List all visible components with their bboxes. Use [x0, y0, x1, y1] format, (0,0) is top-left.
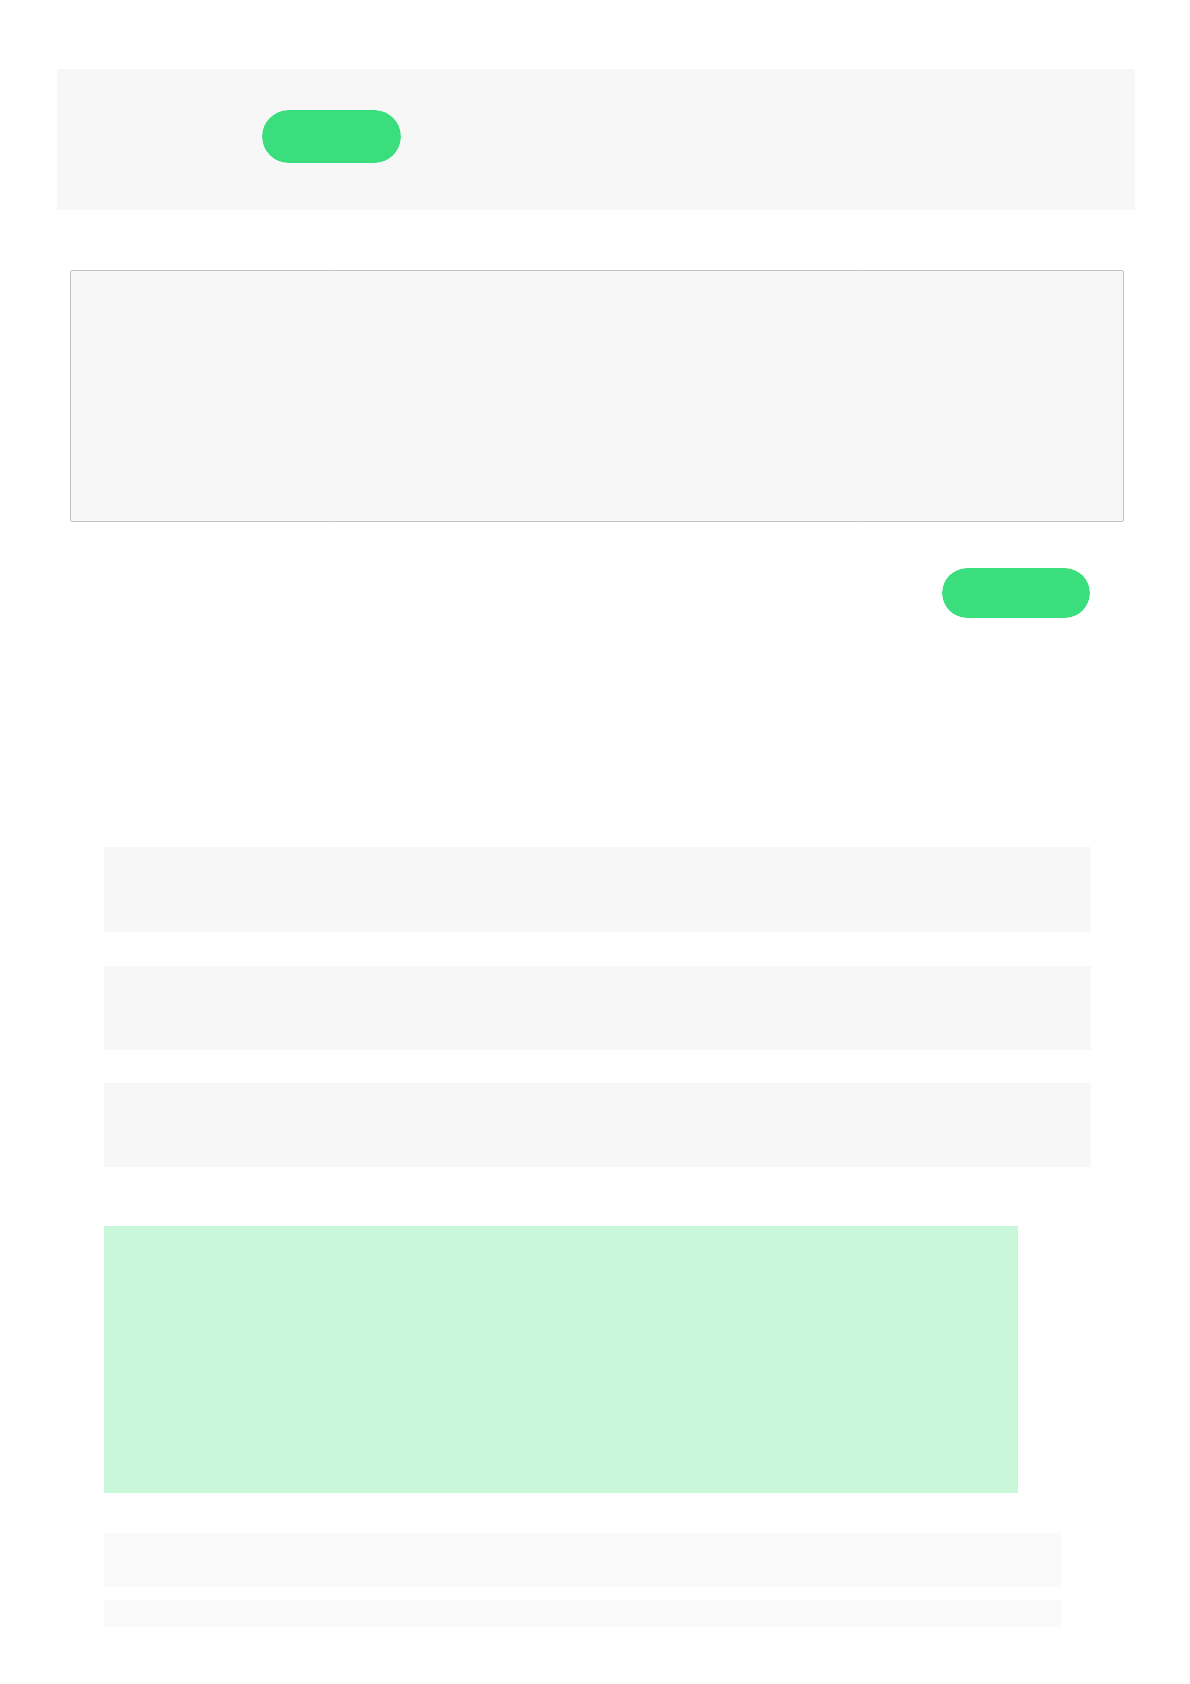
button[interactable]: Primary action: [262, 110, 401, 163]
button[interactable]: Confirm: [942, 568, 1090, 618]
button[interactable]: Content panel: [70, 270, 1124, 522]
